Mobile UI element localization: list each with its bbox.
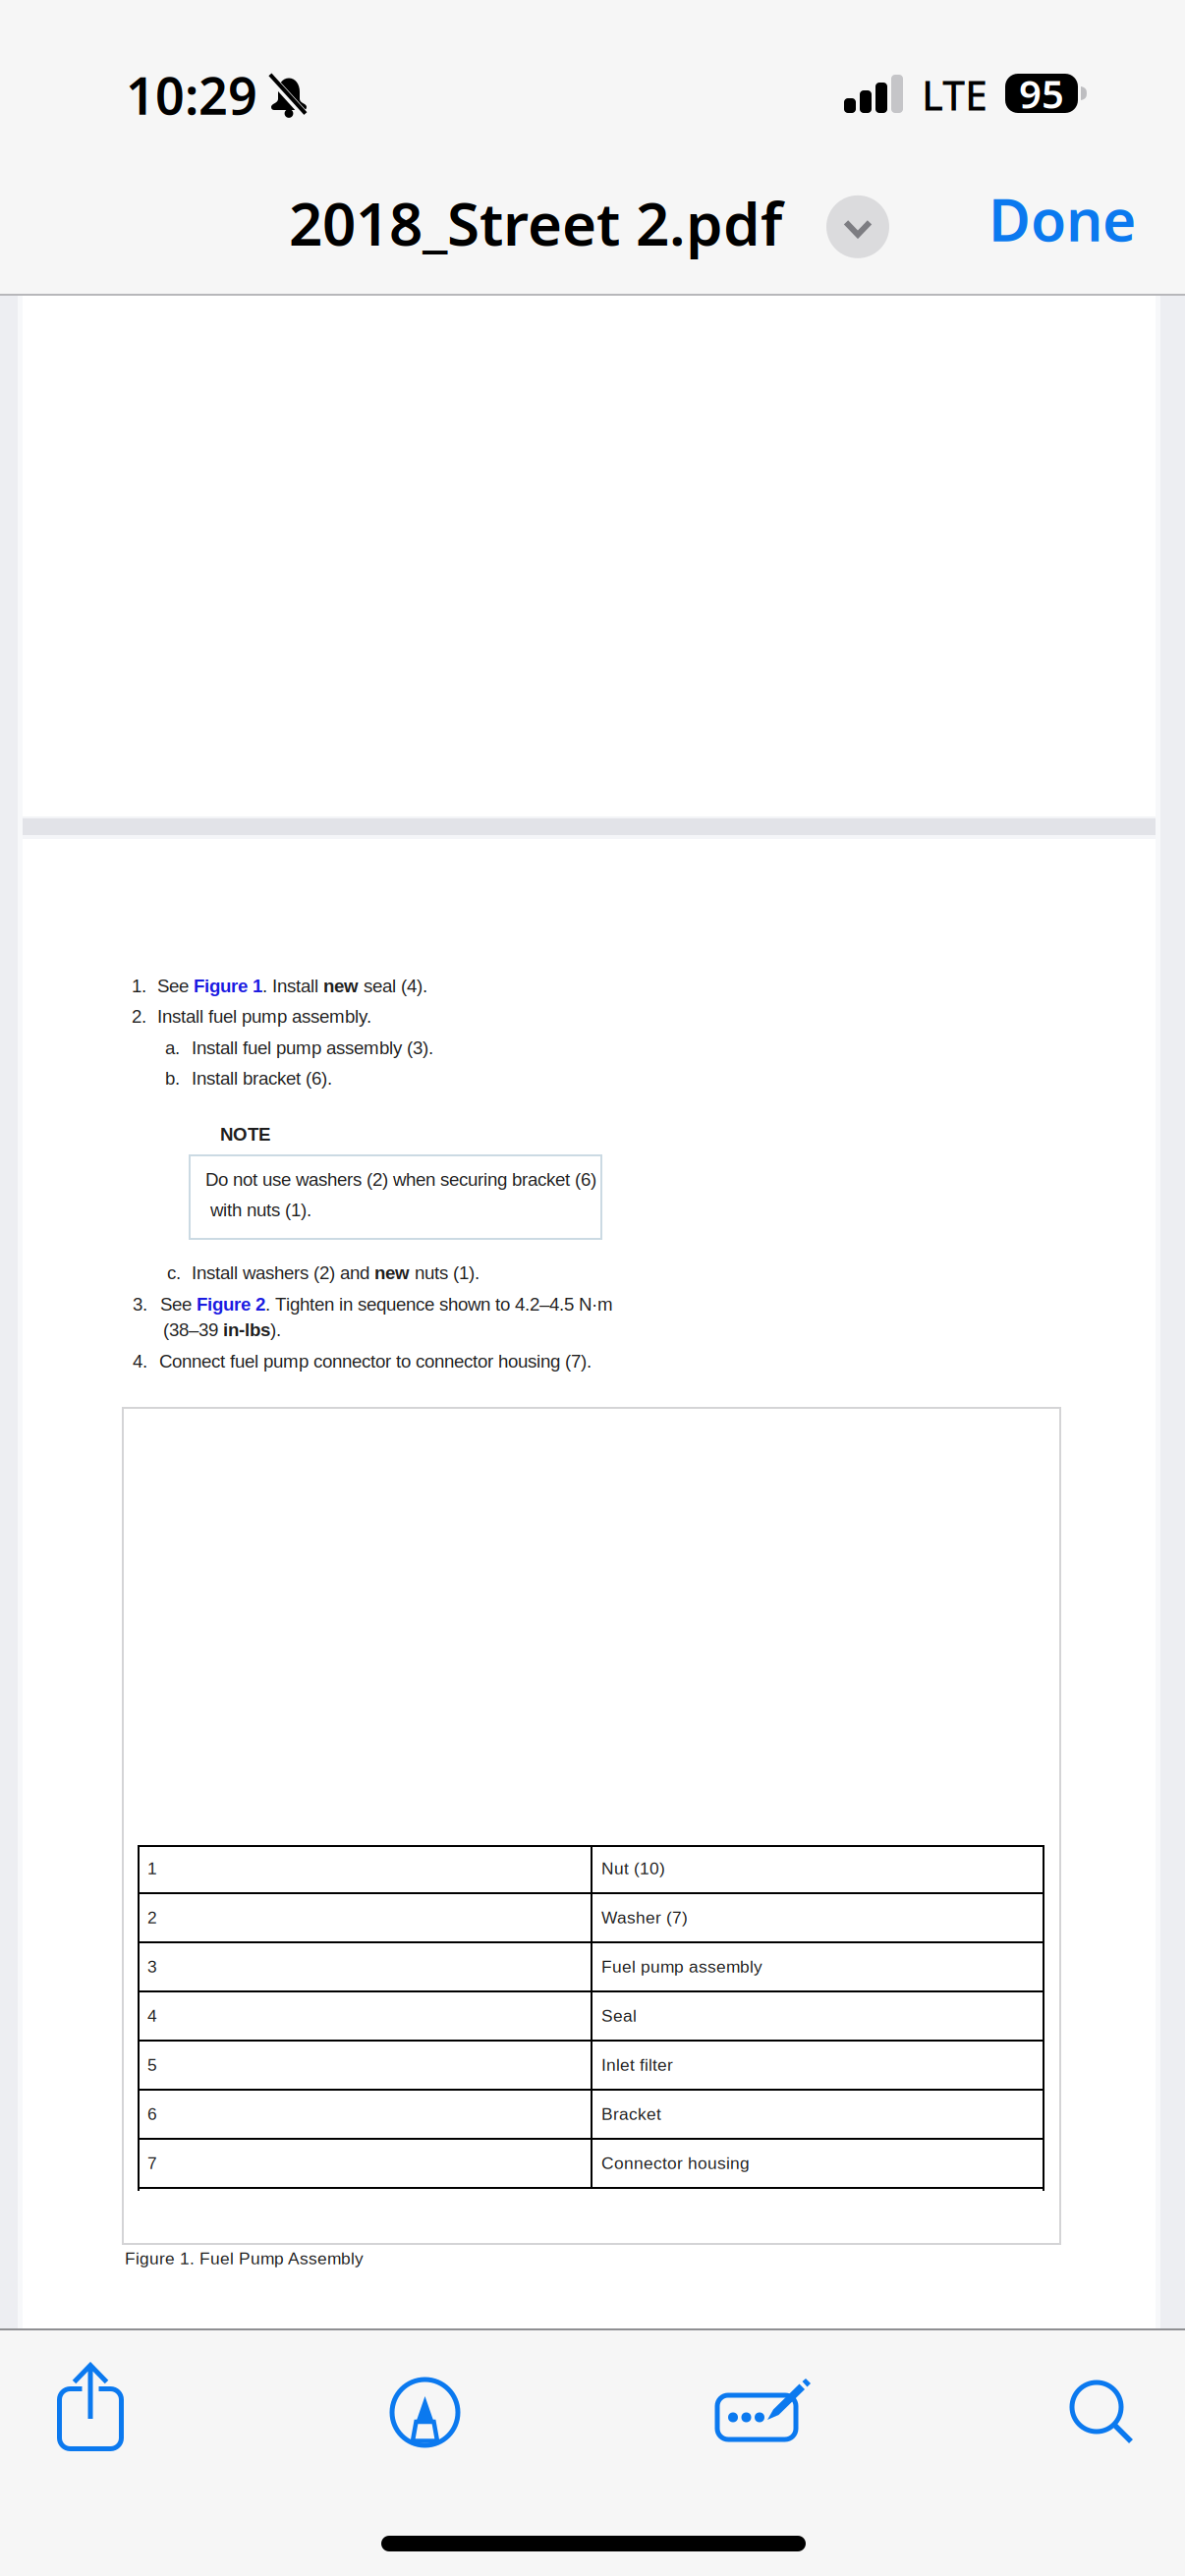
staticText: See [157, 976, 194, 996]
staticText: Nut (10) [601, 1859, 665, 1878]
staticText: Bracket [601, 2104, 661, 2123]
staticText: Install washers (2) and [192, 1262, 374, 1283]
staticText: in-lbs [223, 1319, 270, 1340]
staticText: 2. [132, 1006, 146, 1027]
staticText: seal (4). [359, 976, 427, 996]
staticText: Install bracket (6). [192, 1068, 332, 1088]
button[interactable]: Share [28, 2346, 153, 2467]
staticText: 5 [147, 2055, 157, 2074]
staticText: 3. [133, 1294, 147, 1314]
staticText: b. [165, 1068, 180, 1088]
staticText: 4 [147, 2006, 157, 2025]
staticText: Install fuel pump assembly (3). [192, 1037, 433, 1058]
staticText: 1 [147, 1859, 157, 1878]
staticText: 95 [1019, 67, 1064, 119]
staticText: LTE [922, 68, 987, 122]
button[interactable]: Done [967, 163, 1157, 275]
staticText: Figure 2 [197, 1294, 265, 1314]
staticText: a. [165, 1037, 180, 1058]
staticText: Connector housing [601, 2154, 750, 2173]
staticText: Fuel pump assembly [601, 1957, 762, 1976]
staticText: Do not use washers (2) when securing bra… [205, 1169, 596, 1190]
staticText: 2 [147, 1908, 157, 1927]
staticText: 6 [147, 2104, 157, 2123]
staticText: 4. [133, 1351, 147, 1371]
staticText: Inlet filter [601, 2055, 673, 2074]
staticText: Done [988, 181, 1136, 257]
staticText: 7 [147, 2154, 157, 2173]
staticText: 3 [147, 1957, 157, 1976]
staticText: Install fuel pump assembly. [157, 1006, 371, 1027]
staticText: Seal [601, 2006, 637, 2025]
staticText: new [323, 976, 359, 996]
staticText: Figure 1. Fuel Pump Assembly [125, 2249, 364, 2268]
staticText: 1. [132, 976, 146, 996]
staticText: . Tighten in sequence shown to 4.2–4.5 N… [265, 1294, 613, 1314]
staticText: nuts (1). [410, 1262, 480, 1283]
staticText: new [374, 1262, 410, 1283]
button[interactable]: Markup [359, 2351, 491, 2474]
staticText: c. [167, 1262, 181, 1283]
staticText: 2018_Street 2.pdf [289, 184, 782, 262]
staticText: Figure 1 [194, 976, 262, 996]
staticText: Washer (7) [601, 1908, 688, 1927]
staticText: NOTE [220, 1124, 270, 1144]
button[interactable]: Fill and Sign [698, 2349, 831, 2469]
staticText: with nuts (1). [210, 1200, 311, 1220]
staticText: (38–39 [163, 1319, 223, 1340]
staticText: ). [270, 1319, 281, 1340]
button[interactable]: Search [1035, 2350, 1170, 2476]
staticText: . Install [262, 976, 323, 996]
staticText: Connect fuel pump connector to connector… [159, 1351, 592, 1371]
staticText: 10:29 [126, 61, 257, 129]
button[interactable]: 2018_Street 2.pdf [289, 184, 889, 262]
staticText: See [160, 1294, 197, 1314]
